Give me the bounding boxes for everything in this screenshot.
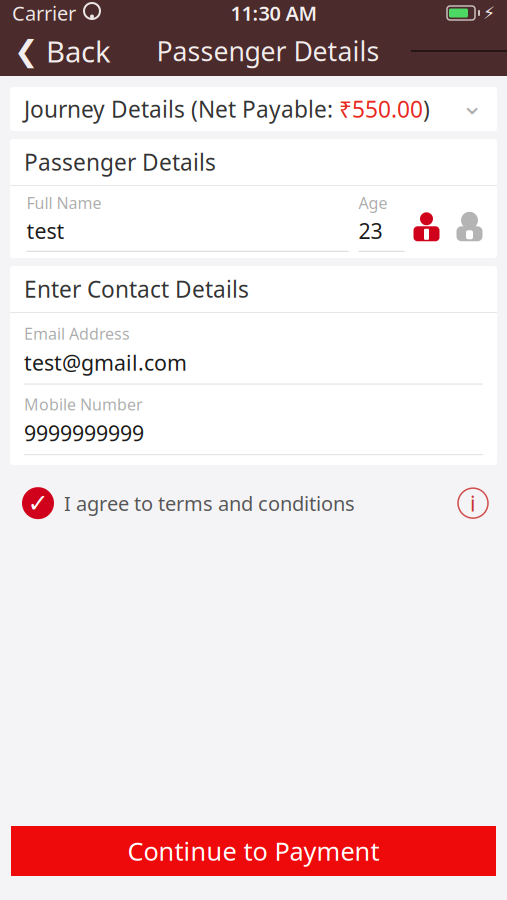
staticText: Back [46,31,111,70]
staticText: Email Address [24,323,130,344]
staticText: 23 [358,216,382,245]
staticText: Age [358,192,387,213]
staticText: 9999999999 [24,419,144,447]
staticText: I agree to terms and conditions [64,490,355,516]
staticText: Continue to Payment [127,834,379,868]
button[interactable]: ❮ [0,27,125,75]
staticText: Full Name [26,192,101,213]
button[interactable]: Male [404,202,448,252]
staticText: Enter Contact Details [24,274,249,304]
staticText: Passenger Details [156,33,379,69]
staticText: ✓ [27,489,48,518]
staticText: Journey Details (Net Payable: [24,94,339,124]
staticText: 11:30 AM [230,0,317,26]
button[interactable]: Journey Details (Net Payable: [10,87,497,131]
staticText: Carrier [12,0,76,26]
button[interactable]: Continue to Payment [11,826,496,876]
button[interactable]: Female [448,202,490,252]
staticText: i [470,489,476,517]
staticText: ₹550.00 [339,94,423,124]
staticText: Passenger Details [24,147,216,177]
staticText: test [26,216,64,245]
staticText: ) [423,94,430,124]
staticText: Mobile Number [24,394,143,415]
staticText: ⚡︎ [483,3,495,23]
staticText: ⌄ [461,90,483,120]
button[interactable]: Terms information [451,481,495,525]
staticText: test@gmail.com [24,348,187,376]
staticText: ❮ [14,34,39,68]
button[interactable]: ✓ [22,481,355,525]
